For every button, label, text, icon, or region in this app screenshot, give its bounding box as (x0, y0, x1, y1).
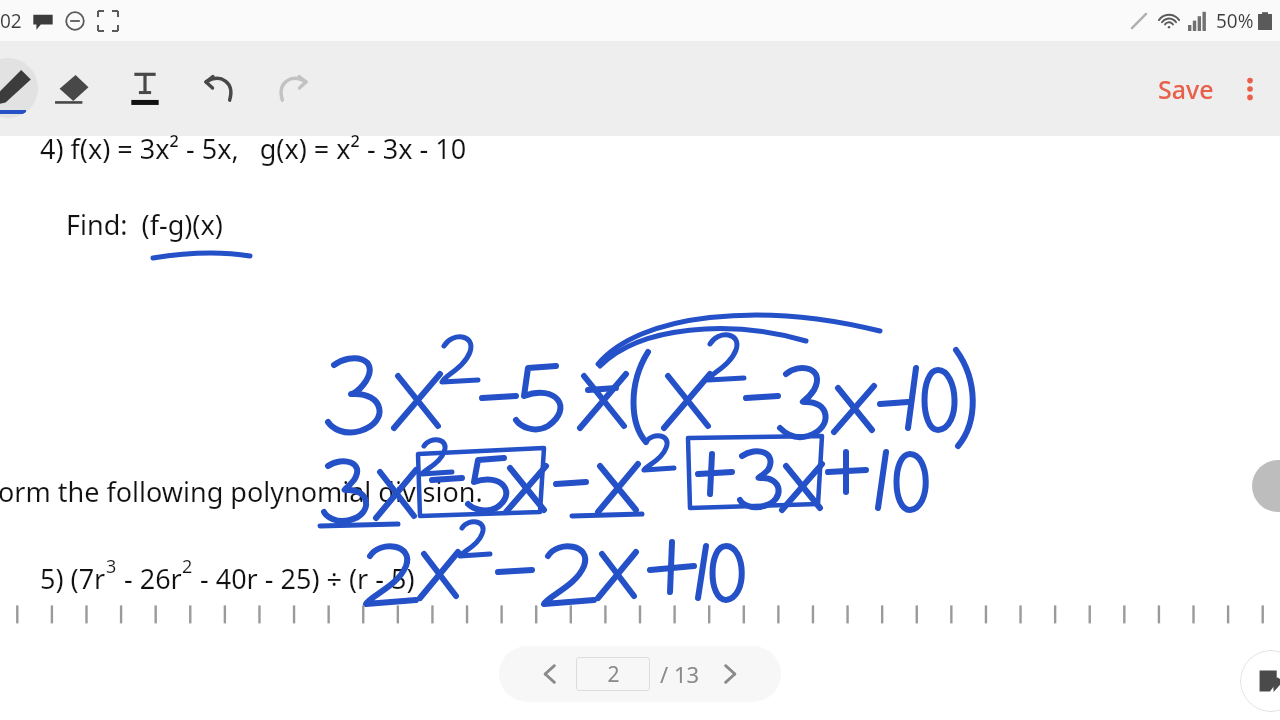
button[interactable]: Previous page (528, 652, 572, 696)
button[interactable]: Scroll handle (1252, 460, 1280, 512)
staticText: 50% (1216, 8, 1254, 34)
staticText: - 40r - 25) ÷ (r - 5) (193, 560, 415, 597)
button[interactable]: Eraser (46, 63, 96, 113)
staticText: Find: (f-g)(x) (66, 206, 223, 243)
staticText: - 26r (117, 560, 182, 597)
staticText: 02 (0, 8, 22, 34)
button[interactable]: More options (1228, 67, 1272, 111)
button[interactable]: Add sticky note (1240, 650, 1280, 712)
button[interactable]: Redo (268, 63, 318, 113)
staticText: 2 (182, 554, 193, 579)
staticText: / 13 (660, 659, 700, 689)
button[interactable]: 2 (576, 657, 650, 691)
staticText: 4) f(x) = 3x² - 5x, g(x) = x² - 3x - 10 (40, 130, 467, 167)
button[interactable]: Undo (194, 63, 244, 113)
staticText: 3 (106, 554, 117, 579)
button[interactable]: Pen (0, 58, 38, 118)
staticText: orm the following polynomial division. (0, 473, 483, 510)
staticText: Save (1158, 72, 1214, 106)
button[interactable]: Save (1148, 66, 1224, 112)
staticText: 5) (7r (40, 560, 106, 597)
staticText: 2 (607, 660, 620, 689)
button[interactable]: Text (120, 63, 170, 113)
button[interactable]: Next page (708, 652, 752, 696)
